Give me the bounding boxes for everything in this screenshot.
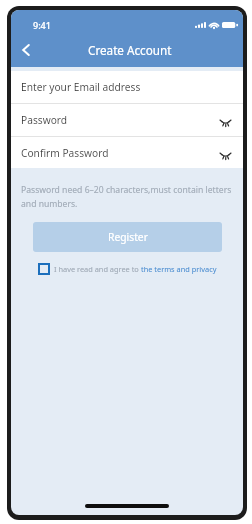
- button[interactable]: Register: [33, 222, 222, 252]
- staticText: Register: [108, 230, 148, 244]
- staticText: Password need 6–20 characters,must conta…: [21, 184, 241, 209]
- staticText: the terms and privacy: [141, 264, 217, 274]
- staticText: Password: [21, 113, 68, 127]
- staticText: Create Account: [88, 42, 172, 58]
- button[interactable]: Enter your Email address: [11, 71, 243, 103]
- staticText: 9:41: [33, 19, 51, 31]
- button[interactable]: Confirm Password: [11, 137, 243, 168]
- staticText: I have read and agree to: [54, 264, 141, 274]
- button[interactable]: Show password: [216, 146, 234, 164]
- button[interactable]: I have read and agree to: [38, 263, 217, 275]
- button[interactable]: Back: [15, 39, 37, 61]
- button[interactable]: Show password: [216, 113, 234, 131]
- staticText: Enter your Email address: [21, 80, 141, 94]
- button[interactable]: Password: [11, 104, 243, 136]
- staticText: Confirm Password: [21, 146, 109, 160]
